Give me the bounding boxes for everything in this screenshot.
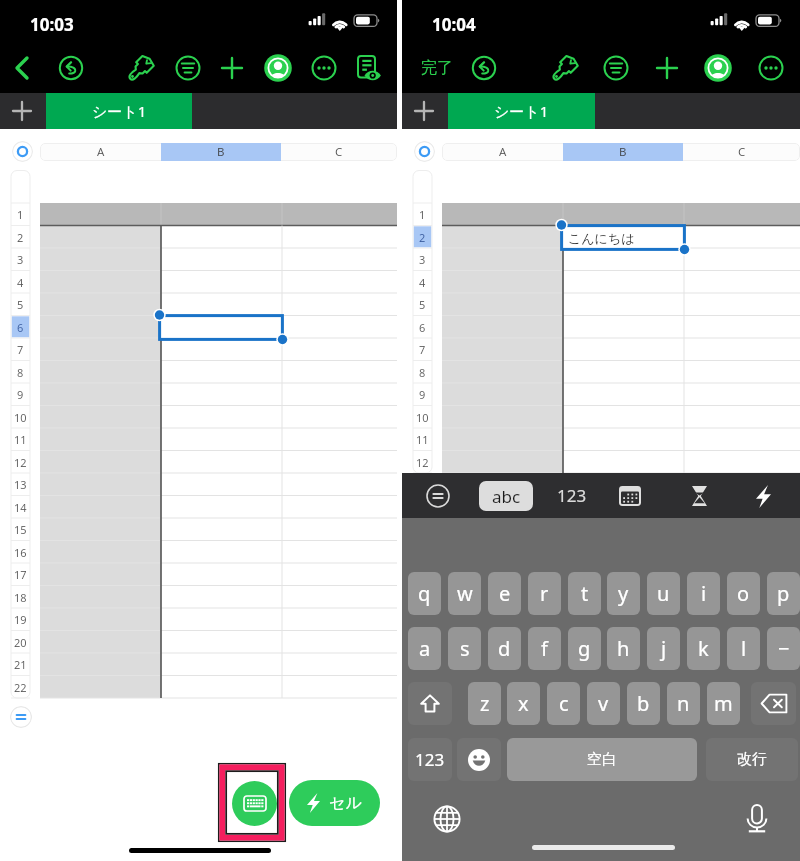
button[interactable]: 完了 [416,45,458,91]
button[interactable]: Format brush [121,45,161,91]
button[interactable]: 改行 [706,738,798,781]
button[interactable]: Back [2,45,42,91]
button[interactable]: Formula [10,706,32,728]
button[interactable]: B [161,143,281,161]
button[interactable]: 4 [11,271,30,294]
button[interactable]: 空白 [507,738,697,781]
button[interactable]: k [687,627,720,670]
button[interactable]: o [727,572,760,615]
button[interactable]: 9 [11,383,30,406]
button[interactable]: Account [698,45,738,91]
button[interactable]: y [607,572,640,615]
button[interactable]: Text format [168,45,208,91]
button[interactable]: 18 [11,586,30,609]
button[interactable]: Add sheet [406,93,442,129]
button[interactable]: n [667,682,700,725]
button[interactable]: 10 [413,406,432,429]
button[interactable]: セル [289,780,380,826]
button[interactable]: h [607,627,640,670]
button[interactable]: x [507,682,540,725]
button[interactable]: Add sheet [4,93,40,129]
button[interactable]: 12 [413,451,432,474]
button[interactable]: 3 [413,248,432,271]
button[interactable]: 10 [11,406,30,429]
button[interactable]: r [528,572,561,615]
button[interactable]: Formula [426,484,450,508]
button[interactable]: Number pad [618,484,642,508]
button[interactable]: d [488,627,521,670]
button[interactable]: l [727,627,760,670]
button[interactable] [563,143,683,161]
button[interactable]: 12 [11,451,30,474]
button[interactable]: 123 [547,480,597,511]
button[interactable]: w [448,572,481,615]
button[interactable]: 9 [413,383,432,406]
button[interactable]: q [408,572,441,615]
button[interactable]: 17 [11,563,30,586]
button[interactable]: 5 [413,293,432,316]
button[interactable]: 21 [11,653,30,676]
button[interactable]: 22 [11,676,30,699]
button[interactable]: Shift [408,682,452,725]
button[interactable]: v [587,682,620,725]
button[interactable]: z [468,682,501,725]
button[interactable]: abc [479,481,533,511]
button[interactable]: Show keyboard [232,781,277,826]
button[interactable]: u [647,572,680,615]
button[interactable]: Insert [212,45,252,91]
button[interactable]: 19 [11,608,30,631]
button[interactable]: 11 [413,428,432,451]
button[interactable]: 3 [11,248,30,271]
button[interactable]: 15 [11,518,30,541]
button[interactable]: g [568,627,601,670]
button[interactable]: C [683,143,800,161]
button[interactable]: 5 [11,293,30,316]
button[interactable]: More options [304,45,344,91]
button[interactable]: Select all [414,141,435,162]
button[interactable]: 8 [413,361,432,384]
button[interactable]: m [707,682,740,725]
button[interactable]: シート1 [46,93,192,129]
button[interactable]: f [528,627,561,670]
button[interactable]: Voice input [743,801,771,833]
button[interactable]: − [767,627,800,670]
button[interactable]: Account [258,45,298,91]
button[interactable]: Quick actions [750,483,776,509]
button[interactable]: 123 [408,738,452,781]
button[interactable]: シート1 [448,93,595,129]
button[interactable]: Text format [596,45,636,91]
button[interactable]: a [408,627,441,670]
button[interactable]: 16 [11,541,30,564]
button[interactable]: c [547,682,580,725]
button[interactable]: Select all [12,141,33,162]
button[interactable]: Backspace [751,682,796,725]
button[interactable]: 8 [11,361,30,384]
button[interactable]: 6 [413,316,432,339]
button[interactable]: 1 [413,203,432,226]
button[interactable]: Insert [647,45,687,91]
button[interactable]: j [647,627,680,670]
button[interactable] [161,143,281,161]
button[interactable]: i [687,572,720,615]
button[interactable]: Undo [51,45,91,91]
button[interactable]: 7 [11,338,30,361]
button[interactable]: 14 [11,496,30,519]
button[interactable]: B [563,143,683,161]
button[interactable]: 6 [11,316,30,339]
button[interactable]: 2 [413,226,432,249]
button[interactable]: Format brush [545,45,585,91]
button[interactable]: 2 [11,226,30,249]
button[interactable]: 1 [11,203,30,226]
button[interactable]: 13 [11,473,30,496]
button[interactable]: 20 [11,631,30,654]
button[interactable]: p [767,572,800,615]
button[interactable]: History [687,483,711,509]
button[interactable]: s [448,627,481,670]
button[interactable]: 7 [413,338,432,361]
button[interactable]: A [40,143,161,161]
button[interactable]: More options [751,45,791,91]
button[interactable]: Undo [464,45,504,91]
button[interactable]: C [281,143,397,161]
button[interactable]: e [488,572,521,615]
button[interactable]: Document view [348,45,388,91]
